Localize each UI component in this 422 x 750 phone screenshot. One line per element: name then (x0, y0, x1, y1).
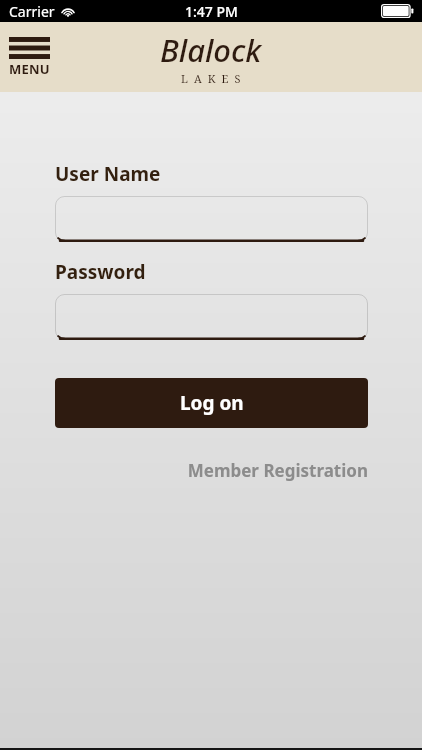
staticText: Password (55, 259, 146, 285)
button[interactable]: Member Registration (55, 459, 368, 482)
staticText: Log on (180, 390, 244, 416)
button[interactable]: Menu (9, 35, 50, 80)
button[interactable]: Log on (55, 378, 368, 428)
staticText: Carrier (9, 2, 55, 21)
button[interactable] (55, 294, 368, 340)
staticText: L A K E S (181, 71, 242, 86)
staticText: User Name (55, 161, 161, 187)
staticText: Blalock (160, 29, 262, 71)
staticText: MENU (9, 60, 50, 78)
button[interactable] (55, 196, 368, 242)
staticText: 1:47 PM (185, 2, 238, 21)
staticText: Member Registration (187, 459, 368, 482)
